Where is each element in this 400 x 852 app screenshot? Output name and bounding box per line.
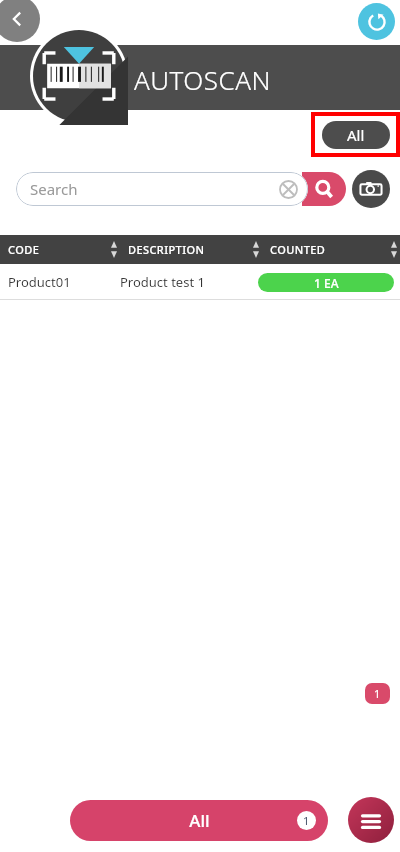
staticText: DESCRIPTION	[128, 242, 205, 257]
button[interactable]: CODE	[8, 241, 120, 258]
button[interactable]: Product01	[0, 264, 400, 300]
button[interactable]: Menu	[348, 797, 394, 843]
staticText: COUNTED	[270, 242, 326, 257]
staticText: Search	[30, 179, 78, 199]
button[interactable]: Search	[302, 172, 346, 206]
button[interactable]: Back	[0, 0, 40, 42]
button[interactable]: All	[322, 121, 390, 149]
button[interactable]: Refresh	[358, 3, 395, 40]
staticText: 1 EA	[314, 275, 339, 291]
staticText: 1	[303, 813, 310, 828]
button[interactable]: All	[70, 800, 328, 841]
staticText: 1	[374, 686, 381, 701]
button[interactable]: Search	[16, 172, 308, 206]
button[interactable]: 1	[365, 683, 390, 704]
staticText: All	[189, 809, 210, 832]
staticText: Product01	[8, 273, 120, 291]
button[interactable]: Camera	[352, 170, 390, 208]
staticText: Product test 1	[120, 273, 258, 291]
button[interactable]: COUNTED	[270, 241, 400, 258]
staticText: All	[347, 125, 365, 145]
button[interactable]: Clear	[279, 180, 298, 199]
staticText: AUTOSCAN	[134, 62, 271, 97]
button[interactable]: DESCRIPTION	[128, 241, 262, 258]
staticText: CODE	[8, 242, 40, 257]
